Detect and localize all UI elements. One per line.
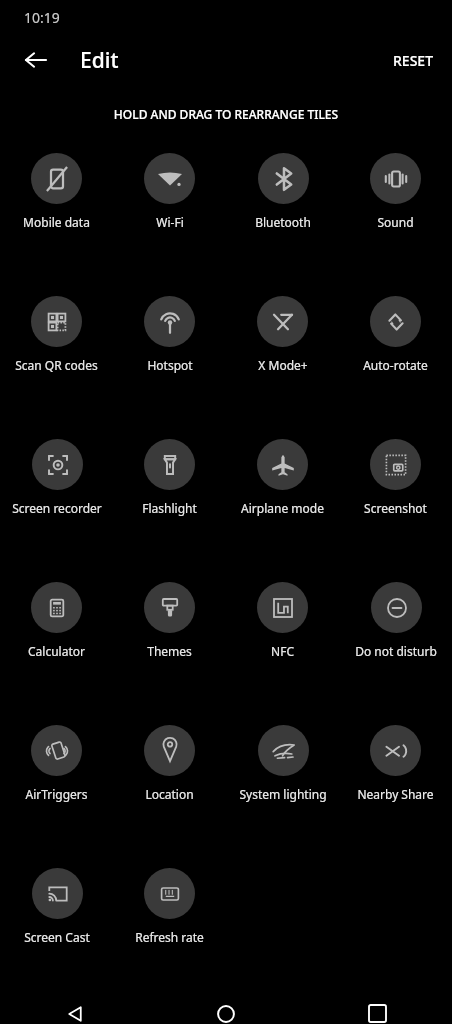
other: Refresh rate [144,868,195,919]
other: Screen recorder [32,439,83,490]
staticText: Bluetooth [255,214,311,230]
staticText: Location [145,786,194,802]
button[interactable]: Bluetooth [255,145,311,230]
staticText: Screen Cast [24,929,90,945]
button[interactable]: RESET [375,41,452,80]
staticText: Screen recorder [12,500,102,516]
button[interactable]: Location [144,717,195,802]
staticText: Auto-rotate [363,357,428,373]
other: NFC [257,582,308,633]
other: Location [144,725,195,776]
other: Screen Cast [32,868,83,919]
staticText: Airplane mode [241,500,324,516]
button[interactable]: Mobile data [23,145,90,230]
staticText: Scan QR codes [15,357,98,373]
other: Themes [144,582,195,633]
staticText: System lighting [239,786,327,802]
other: Auto-rotate [370,296,421,347]
staticText: Edit [80,46,119,75]
staticText: Hotspot [147,357,193,373]
other: Sound [370,153,421,204]
staticText: Screenshot [364,500,427,516]
button[interactable]: Nearby Share [357,717,434,802]
staticText: HOLD AND DRAG TO REARRANGE TILES [0,106,452,122]
button[interactable]: Refresh rate [135,860,204,945]
button[interactable]: X Mode+ [257,288,308,373]
button[interactable]: Back [51,1003,99,1024]
other: Airplane mode [257,439,308,490]
other: Scan QR codes [31,296,82,347]
button[interactable]: System lighting [239,717,327,802]
other: System lighting [258,725,309,776]
button[interactable]: Back [12,36,60,84]
button[interactable]: Home [202,1003,250,1024]
button[interactable]: Hotspot [144,288,195,373]
button[interactable]: Airplane mode [241,431,324,516]
other: Flashlight [144,439,195,490]
staticText: Mobile data [23,214,90,230]
staticText: AirTriggers [25,786,88,802]
staticText: 10:19 [24,8,60,27]
button[interactable]: Sound [370,145,421,230]
other: Do not disturb [371,582,422,633]
other: Nearby Share [370,725,421,776]
other: Screenshot [370,439,421,490]
staticText: X Mode+ [258,357,308,373]
other: Calculator [31,582,82,633]
button[interactable]: Auto-rotate [363,288,428,373]
other: Mobile data [31,153,82,204]
staticText: Refresh rate [135,929,204,945]
other: X Mode+ [257,296,308,347]
staticText: NFC [271,643,294,659]
button[interactable]: Screen Cast [24,860,90,945]
other: Hotspot [144,296,195,347]
other: AirTriggers [31,725,82,776]
button[interactable]: Do not disturb [355,574,437,659]
button[interactable]: Themes [144,574,195,659]
other: Wi-Fi [144,153,195,204]
button[interactable]: Wi-Fi [144,145,195,230]
button[interactable]: Flashlight [142,431,197,516]
button[interactable]: Calculator [28,574,85,659]
staticText: Sound [377,214,414,230]
staticText: Calculator [28,643,85,659]
button[interactable]: Screen recorder [12,431,102,516]
staticText: Nearby Share [357,786,434,802]
staticText: Themes [147,643,192,659]
button[interactable]: Scan QR codes [15,288,98,373]
staticText: Do not disturb [355,643,437,659]
button[interactable]: Screenshot [364,431,427,516]
button[interactable]: Recent apps [353,1003,401,1024]
button[interactable]: AirTriggers [25,717,88,802]
staticText: RESET [393,51,434,70]
staticText: Flashlight [142,500,197,516]
staticText: Wi-Fi [156,214,184,230]
other: Bluetooth [258,153,309,204]
button[interactable]: NFC [257,574,308,659]
